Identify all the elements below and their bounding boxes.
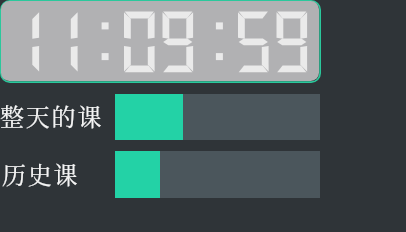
button[interactable]: Digital clock 11:09:59 bbox=[0, 0, 321, 83]
button[interactable]: 历史课 progress bbox=[115, 151, 320, 198]
staticText: 整天的课 bbox=[0, 98, 104, 132]
staticText: 历史课 bbox=[2, 156, 80, 190]
button[interactable]: 整天的课 progress bbox=[115, 94, 320, 140]
